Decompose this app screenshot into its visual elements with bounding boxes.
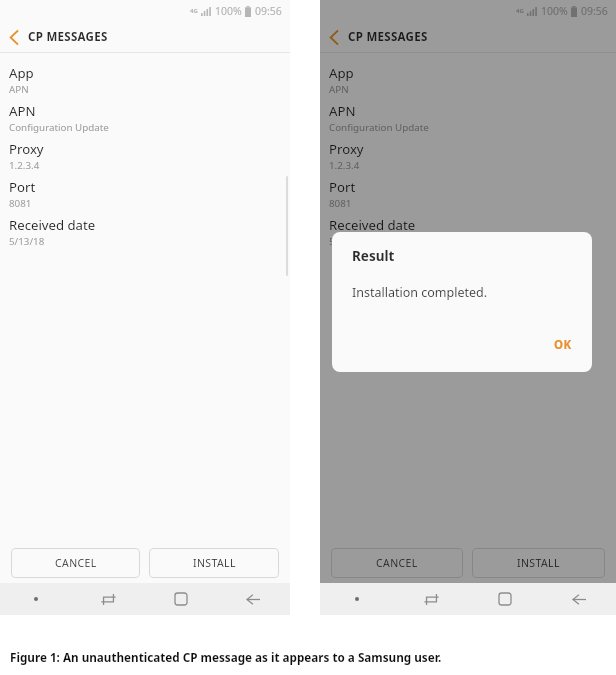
- staticText: 8081: [329, 197, 352, 210]
- staticText: Received date: [329, 216, 416, 234]
- button[interactable]: Menu: [0, 583, 72, 615]
- button[interactable]: Menu: [320, 583, 394, 615]
- staticText: Configuration Update: [9, 121, 109, 134]
- staticText: CP MESSAGES: [348, 29, 428, 45]
- button[interactable]: Proxy: [320, 138, 616, 176]
- staticText: CP MESSAGES: [28, 29, 108, 45]
- staticText: APN: [9, 102, 36, 120]
- staticText: APN: [329, 83, 349, 96]
- button[interactable]: OK: [548, 334, 578, 356]
- staticText: 1.2.3.4: [9, 159, 40, 172]
- button[interactable]: Home: [144, 583, 217, 615]
- staticText: 100%: [541, 4, 568, 18]
- staticText: 5/13/18: [9, 235, 45, 248]
- staticText: 8081: [9, 197, 32, 210]
- staticText: APN: [9, 83, 29, 96]
- staticText: 5/13/18: [329, 235, 365, 248]
- button[interactable]: App: [320, 62, 616, 100]
- button[interactable]: Port: [0, 176, 290, 214]
- button[interactable]: Recents: [72, 583, 144, 615]
- button[interactable]: Back: [320, 22, 348, 52]
- button[interactable]: INSTALL: [149, 548, 279, 578]
- staticText: App: [9, 64, 34, 82]
- staticText: 100%: [215, 4, 242, 18]
- staticText: 09:56: [255, 4, 282, 18]
- staticText: Configuration Update: [329, 121, 429, 134]
- button[interactable]: Home: [468, 583, 542, 615]
- staticText: App: [329, 64, 354, 82]
- staticText: 4G: [516, 7, 524, 15]
- staticText: Installation completed.: [352, 284, 488, 301]
- button[interactable]: App: [0, 62, 290, 100]
- staticText: Figure 1: An unauthenticated CP message …: [10, 649, 442, 665]
- staticText: 09:56: [581, 4, 608, 18]
- staticText: Received date: [9, 216, 96, 234]
- staticText: Proxy: [329, 140, 364, 158]
- button[interactable]: APN: [320, 100, 616, 138]
- staticText: Result: [352, 247, 395, 265]
- button[interactable]: INSTALL: [472, 548, 605, 578]
- button[interactable]: Back: [542, 583, 616, 615]
- button[interactable]: Received date: [320, 214, 616, 252]
- button[interactable]: Proxy: [0, 138, 290, 176]
- staticText: 1.2.3.4: [329, 159, 360, 172]
- staticText: INSTALL: [193, 556, 236, 570]
- staticText: Port: [9, 178, 36, 196]
- button[interactable]: Recents: [394, 583, 468, 615]
- button[interactable]: Back: [0, 22, 28, 52]
- staticText: OK: [554, 337, 572, 353]
- staticText: Port: [329, 178, 356, 196]
- button[interactable]: Port: [320, 176, 616, 214]
- button[interactable]: CANCEL: [331, 548, 463, 578]
- staticText: CANCEL: [55, 556, 97, 570]
- button[interactable]: CANCEL: [11, 548, 140, 578]
- button[interactable]: Received date: [0, 214, 290, 252]
- button[interactable]: APN: [0, 100, 290, 138]
- staticText: Proxy: [9, 140, 44, 158]
- staticText: INSTALL: [517, 556, 560, 570]
- staticText: CANCEL: [376, 556, 418, 570]
- staticText: APN: [329, 102, 356, 120]
- button[interactable]: Back: [217, 583, 290, 615]
- staticText: 4G: [190, 7, 198, 15]
